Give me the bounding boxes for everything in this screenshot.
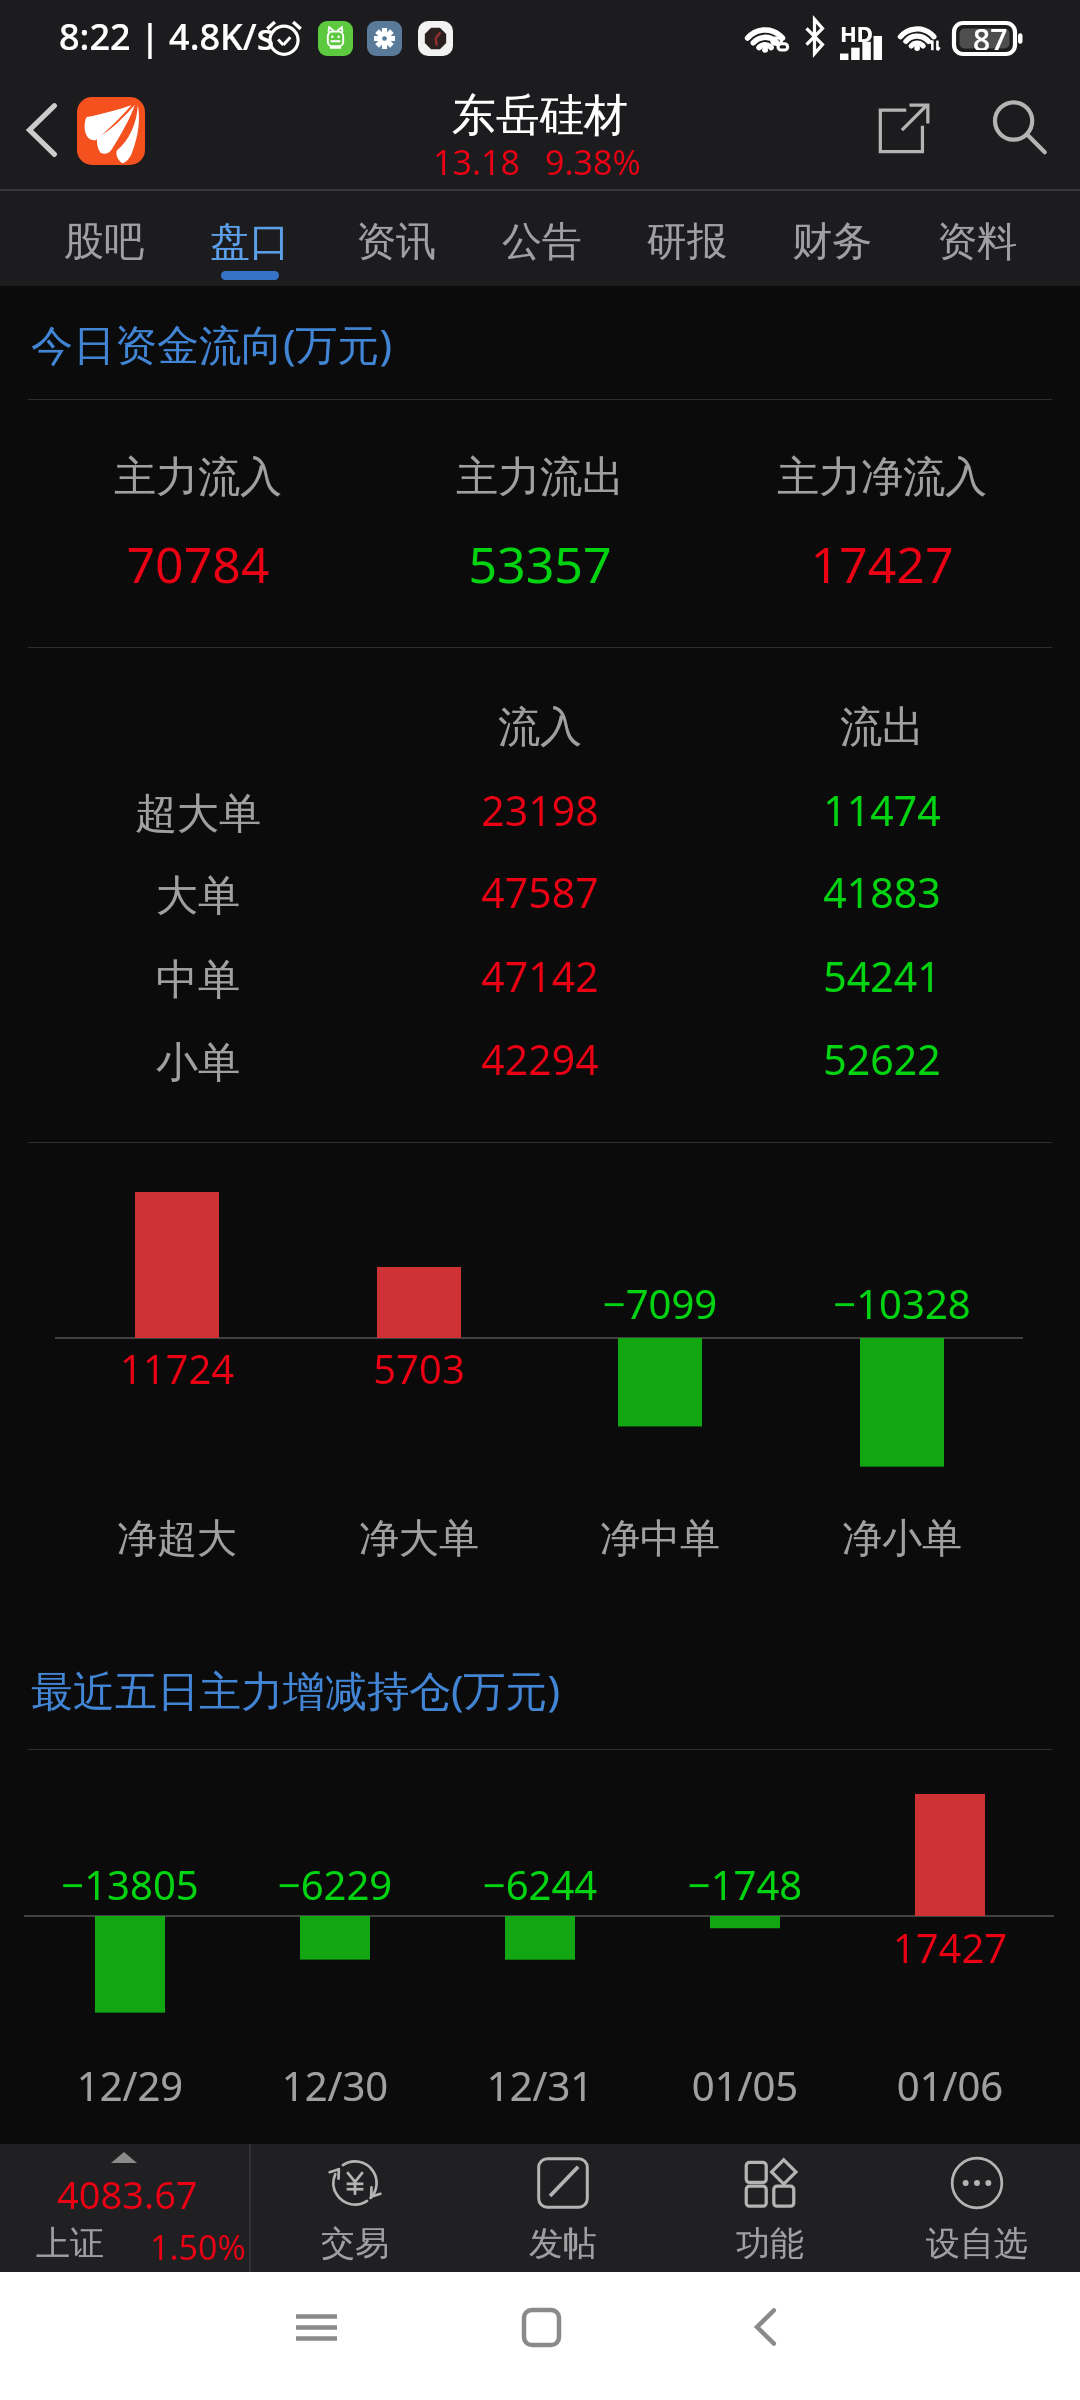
button[interactable]: 设自选: [873, 2144, 1080, 2272]
staticText: 70784: [0, 530, 398, 598]
staticText: 23198: [340, 782, 740, 838]
staticText: 盘口: [210, 216, 290, 266]
staticText: 主力流出: [340, 451, 740, 504]
staticText: 流入: [340, 701, 740, 754]
button[interactable]: 发帖: [459, 2144, 666, 2272]
button[interactable]: 交易: [251, 2144, 459, 2272]
staticText: 11724: [0, 1341, 377, 1395]
staticText: 主力净流入: [682, 451, 1080, 504]
staticText: 财务: [792, 216, 872, 266]
staticText: −13805: [0, 1857, 330, 1911]
staticText: 功能: [736, 2222, 804, 2265]
button[interactable]: 资讯: [323, 189, 469, 286]
staticText: 4083.67: [57, 2168, 198, 2220]
staticText: 17427: [682, 530, 1080, 598]
staticText: 01/05: [545, 2058, 945, 2112]
button[interactable]: 功能: [666, 2144, 873, 2272]
staticText: 超大单: [0, 788, 398, 841]
button[interactable]: Recents: [271, 2282, 361, 2372]
button[interactable]: Eastmoney: [77, 97, 145, 165]
staticText: 设自选: [926, 2222, 1028, 2265]
staticText: 01/06: [750, 2058, 1080, 2112]
button[interactable]: 资料: [904, 189, 1049, 286]
staticText: 47587: [340, 864, 740, 920]
button[interactable]: 财务: [759, 189, 904, 286]
staticText: 5703: [219, 1341, 619, 1395]
staticText: 交易: [321, 2222, 389, 2265]
staticText: 东岳硅材: [452, 88, 628, 143]
staticText: 54241: [682, 948, 1080, 1004]
staticText: 净中单: [460, 1513, 860, 1563]
button[interactable]: Home: [496, 2282, 586, 2372]
button[interactable]: Back: [9, 97, 75, 163]
staticText: 净大单: [219, 1513, 619, 1563]
button[interactable]: Back: [720, 2282, 810, 2372]
staticText: 发帖: [529, 2222, 597, 2265]
staticText: 资讯: [356, 216, 436, 266]
staticText: 11474: [682, 782, 1080, 838]
staticText: −1748: [545, 1857, 945, 1911]
staticText: 流出: [682, 701, 1080, 754]
staticText: 净小单: [702, 1513, 1080, 1563]
staticText: 12/31: [340, 2058, 740, 2112]
staticText: 主力流入: [0, 451, 398, 504]
button[interactable]: 4083.67: [0, 2144, 249, 2272]
staticText: 上证: [36, 2222, 104, 2265]
staticText: 42294: [340, 1031, 740, 1087]
staticText: 今日资金流向(万元): [31, 315, 393, 372]
staticText: 47142: [340, 948, 740, 1004]
button[interactable]: 盘口: [177, 189, 323, 286]
staticText: −6244: [340, 1857, 740, 1911]
staticText: 12/30: [135, 2058, 535, 2112]
staticText: 最近五日主力增减持仓(万元): [31, 1661, 561, 1718]
staticText: 12/29: [0, 2058, 330, 2112]
staticText: 股吧: [64, 216, 144, 266]
staticText: HD: [840, 18, 873, 48]
staticText: 大单: [0, 870, 398, 923]
button[interactable]: 公告: [469, 189, 614, 286]
staticText: −10328: [702, 1276, 1080, 1330]
button[interactable]: Search: [982, 90, 1056, 164]
button[interactable]: 研报: [614, 189, 759, 286]
staticText: 1.50%: [150, 2224, 246, 2270]
button[interactable]: 股吧: [31, 189, 177, 286]
staticText: 87: [973, 19, 1008, 50]
staticText: 研报: [647, 216, 727, 266]
staticText: 中单: [0, 954, 398, 1007]
staticText: −6229: [135, 1857, 535, 1911]
staticText: 小单: [0, 1037, 398, 1090]
staticText: 13.18: [433, 139, 520, 185]
button[interactable]: Share: [866, 92, 940, 166]
staticText: 净超大: [0, 1513, 377, 1563]
staticText: 9.38%: [545, 139, 641, 185]
staticText: 8:22 | 4.8K/s: [59, 12, 275, 61]
staticText: 17427: [750, 1920, 1080, 1974]
staticText: 52622: [682, 1031, 1080, 1087]
staticText: 41883: [682, 864, 1080, 920]
staticText: 公告: [502, 216, 582, 266]
staticText: −7099: [460, 1276, 860, 1330]
staticText: 53357: [340, 530, 740, 598]
staticText: 资料: [937, 216, 1017, 266]
